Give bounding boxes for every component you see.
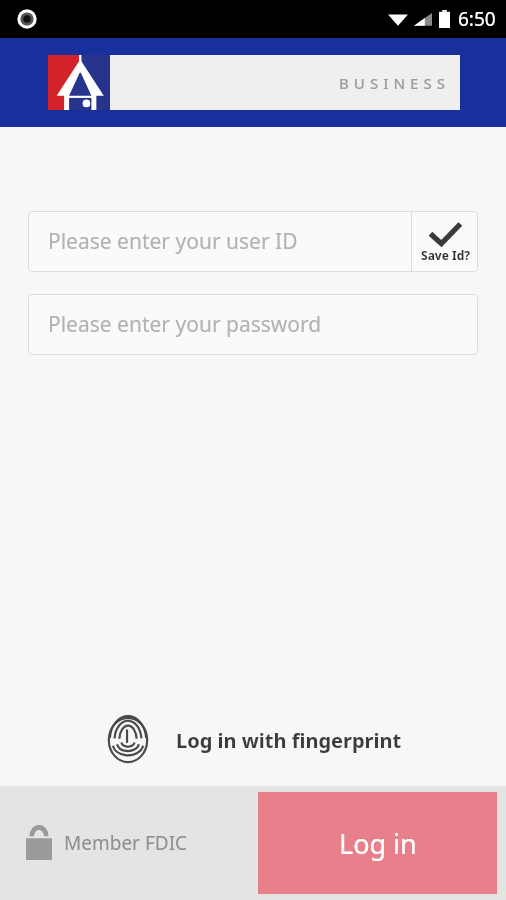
staticText: Log in	[339, 825, 417, 862]
button[interactable]: Save Id?	[412, 211, 478, 272]
staticText: 6:50	[458, 6, 496, 32]
staticText: Please enter your user ID	[48, 227, 298, 256]
other: Fingerprint	[104, 716, 152, 764]
button[interactable]: Fingerprint	[0, 716, 506, 764]
staticText: Member FDIC	[64, 830, 188, 856]
button[interactable]: Log in	[258, 792, 497, 894]
button[interactable]: BUSINESS	[48, 55, 460, 110]
staticText: BUSINESS	[339, 73, 450, 93]
staticText: Save Id?	[421, 247, 470, 263]
staticText: Log in with fingerprint	[176, 727, 402, 754]
staticText: Please enter your password	[48, 310, 322, 339]
button[interactable]: Member FDIC	[26, 826, 188, 860]
button[interactable]: Please enter your user ID	[28, 211, 411, 272]
button[interactable]: Please enter your password	[28, 294, 478, 355]
